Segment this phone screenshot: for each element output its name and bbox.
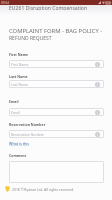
staticText: First Name <box>11 62 29 67</box>
button[interactable]: Email <box>9 108 104 116</box>
staticText: Reservation Number <box>11 132 44 137</box>
staticText: Last Name <box>9 74 28 79</box>
staticText: Reservation Number <box>9 122 46 127</box>
button[interactable]: EU261 Disruption Compensation <box>0 5 112 10</box>
staticText: COMPLAINT FORM - BAG POLICY - <box>9 27 103 35</box>
button[interactable] <box>9 161 104 183</box>
button[interactable]: More info <box>95 62 100 67</box>
staticText: Email <box>9 99 19 104</box>
staticText: Comment <box>9 153 27 158</box>
button[interactable]: More info <box>95 82 100 87</box>
staticText: 09:54 <box>1 1 10 5</box>
staticText: 2018 © Ryanair Ltd. All rights reserved. <box>12 187 74 192</box>
staticText: First Name <box>9 52 29 57</box>
button[interactable]: More info <box>95 132 100 137</box>
button[interactable]: First Name <box>9 60 104 68</box>
staticText: Last Name <box>11 82 28 87</box>
staticText: EU261 Disruption Compensation <box>9 5 88 10</box>
button[interactable]: Last Name <box>9 80 104 88</box>
staticText: REFUND REQUEST <box>9 35 52 42</box>
button[interactable]: What is this <box>9 141 30 146</box>
staticText: Email <box>11 110 20 115</box>
button[interactable]: More info <box>95 110 100 115</box>
button[interactable]: Reservation Number <box>9 130 104 138</box>
